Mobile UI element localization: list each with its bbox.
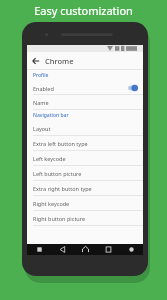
staticText: Menu <box>33 163 45 166</box>
button[interactable]: More <box>120 244 143 255</box>
staticText: Name <box>33 99 49 106</box>
staticText: Forward <box>33 208 50 211</box>
staticText: Left button picture <box>33 170 82 177</box>
staticText: Extra right button type <box>33 185 92 192</box>
button[interactable]: Right button picture <box>27 211 143 226</box>
staticText: Right keycode <box>33 200 70 207</box>
button[interactable]: Left button picture <box>27 166 143 181</box>
button[interactable]: Layout <box>27 121 143 136</box>
staticText: Navigation bar <box>33 112 69 119</box>
staticText: Profile <box>33 72 49 79</box>
button[interactable]: Back <box>51 244 74 255</box>
button[interactable]: Recents <box>97 244 120 255</box>
staticText: Enabled <box>33 85 54 92</box>
staticText: Left keycode <box>33 155 66 162</box>
staticText: Unchanged <box>33 133 57 136</box>
button[interactable]: Menu <box>27 244 51 255</box>
button[interactable]: Enabled <box>27 81 143 95</box>
staticText: Easy customization <box>34 3 133 18</box>
staticText: Layout <box>33 125 51 132</box>
staticText: Chrome <box>45 56 74 66</box>
button[interactable]: Extra right button type <box>27 181 143 196</box>
button[interactable]: Back <box>27 52 45 70</box>
staticText: Extra left button type <box>33 140 88 147</box>
staticText: Keycode <box>33 148 50 151</box>
staticText: Keycode <box>33 193 50 196</box>
button[interactable]: Home <box>74 244 97 255</box>
button[interactable]: Left keycode <box>27 151 143 166</box>
staticText: Change the profile name <box>33 107 84 110</box>
button[interactable]: Right keycode <box>27 196 143 211</box>
staticText: Right button picture <box>33 215 86 222</box>
button[interactable]: Name <box>27 95 143 110</box>
staticText: menu.png <box>33 178 54 181</box>
button[interactable]: Extra left button type <box>27 136 143 151</box>
